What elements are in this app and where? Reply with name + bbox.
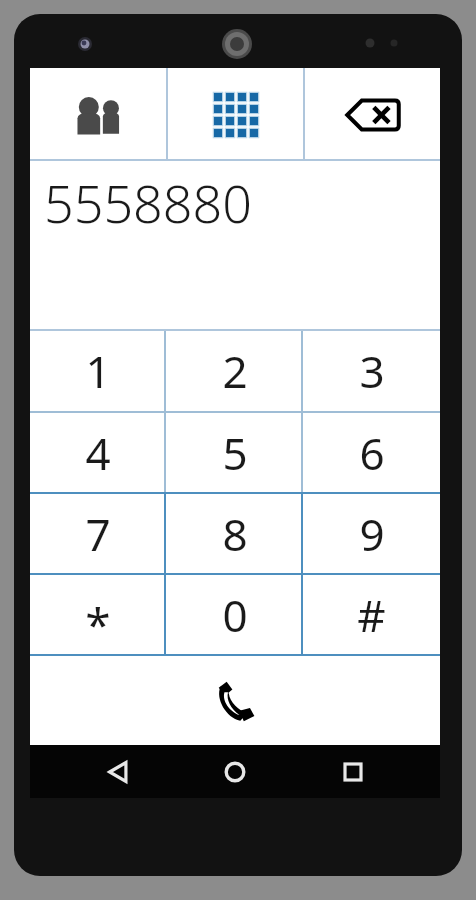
button[interactable]: Keypad xyxy=(168,68,303,161)
staticText: # xyxy=(357,585,386,645)
button[interactable]: 4 xyxy=(30,413,166,492)
button[interactable]: 9 xyxy=(303,494,440,573)
button[interactable]: Home xyxy=(205,745,265,798)
button[interactable]: 6 xyxy=(303,413,440,492)
button[interactable]: 8 xyxy=(166,494,303,573)
button[interactable]: # xyxy=(303,575,440,654)
staticText: 5558880 xyxy=(44,167,252,238)
staticText: 0 xyxy=(222,585,248,645)
button[interactable]: Call xyxy=(30,656,440,745)
staticText: 1 xyxy=(85,341,111,401)
staticText: 4 xyxy=(85,423,111,483)
staticText: 3 xyxy=(359,341,385,401)
button[interactable]: 2 xyxy=(166,331,303,411)
staticText: * xyxy=(85,593,111,656)
button[interactable]: Back xyxy=(88,745,148,798)
button[interactable]: 0 xyxy=(166,575,303,654)
staticText: 2 xyxy=(222,341,248,401)
button[interactable]: 1 xyxy=(30,331,166,411)
staticText: 7 xyxy=(85,504,111,564)
button[interactable]: Contacts xyxy=(30,68,166,161)
staticText: 5 xyxy=(222,423,248,483)
staticText: 6 xyxy=(359,423,385,483)
staticText: 9 xyxy=(359,504,385,564)
button[interactable]: 3 xyxy=(303,331,440,411)
button[interactable]: * xyxy=(30,575,166,654)
button[interactable]: 7 xyxy=(30,494,166,573)
button[interactable]: 5558880 xyxy=(30,161,440,331)
button[interactable]: Backspace xyxy=(305,68,440,161)
button[interactable]: 5 xyxy=(166,413,303,492)
staticText: 8 xyxy=(222,504,248,564)
button[interactable]: Recent apps xyxy=(323,745,383,798)
